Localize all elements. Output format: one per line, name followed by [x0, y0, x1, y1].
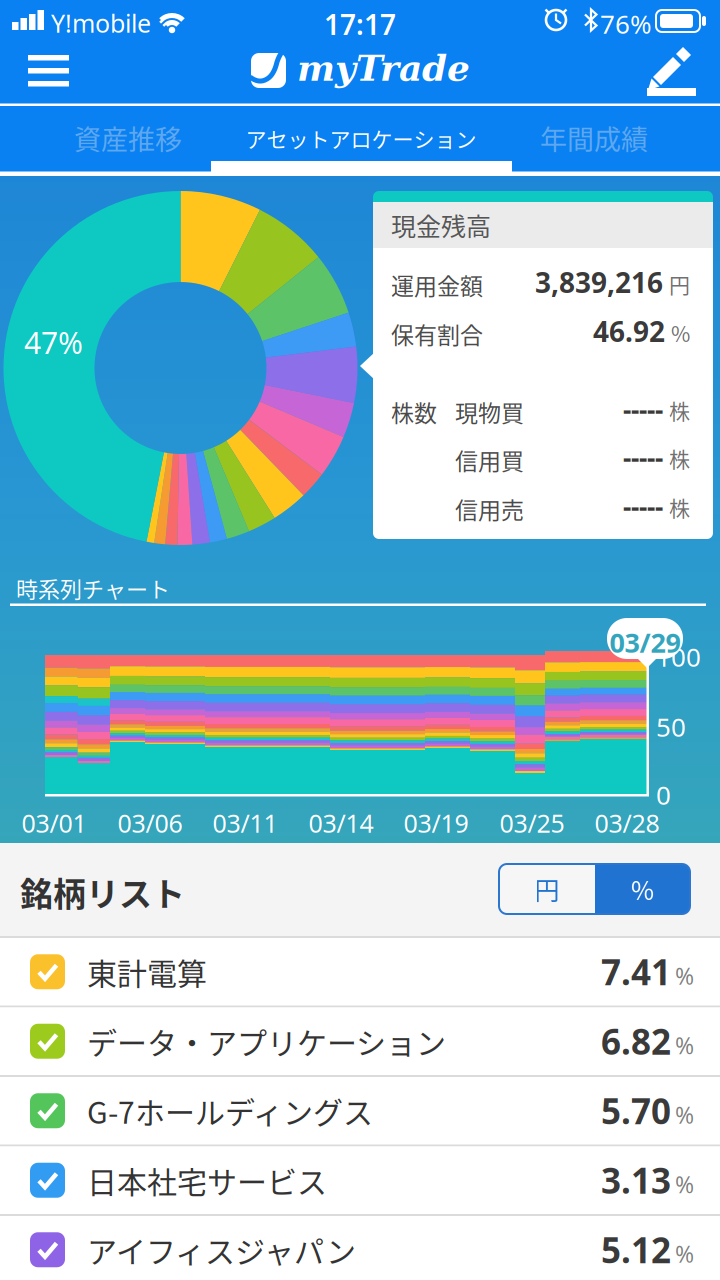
staticText: アイフィスジャパン: [87, 1228, 356, 1271]
staticText: %: [675, 1238, 694, 1270]
staticText: 03/06: [117, 806, 182, 840]
staticText: 信用売: [455, 492, 524, 525]
button[interactable]: Menu: [0, 0, 70, 60]
staticText: 76%: [600, 6, 652, 41]
staticText: 5.12: [601, 1226, 671, 1274]
staticText: 3.13: [601, 1156, 671, 1204]
button[interactable]: Edit: [0, 0, 60, 62]
staticText: 時系列チャート: [16, 572, 170, 604]
button[interactable]: %: [595, 864, 690, 914]
staticText: 株: [669, 395, 690, 425]
staticText: 0: [656, 777, 671, 812]
staticText: 現物買: [455, 395, 524, 428]
button[interactable]: アセットアロケーション: [211, 112, 511, 164]
staticText: 7.41: [601, 948, 671, 996]
staticText: -----: [623, 440, 663, 475]
button[interactable]: G-7ホールディングス: [0, 1077, 720, 1144]
staticText: データ・アプリケーション: [87, 1019, 446, 1063]
staticText: 03/01: [21, 806, 86, 840]
staticText: 信用買: [455, 443, 524, 476]
staticText: myTrade: [297, 47, 470, 89]
staticText: 03/19: [403, 806, 468, 840]
staticText: -----: [623, 392, 663, 427]
staticText: %: [631, 871, 654, 907]
staticText: 47%: [24, 322, 83, 363]
staticText: %: [675, 1169, 694, 1200]
staticText: 5.70: [601, 1087, 671, 1135]
staticText: 円: [534, 871, 559, 907]
staticText: 03/29: [609, 624, 680, 661]
staticText: 03/28: [594, 806, 659, 840]
staticText: 03/11: [212, 806, 277, 840]
staticText: 株: [669, 443, 690, 473]
button[interactable]: 円: [499, 864, 595, 914]
staticText: 株: [669, 492, 690, 522]
button[interactable]: 資産推移: [28, 112, 228, 164]
button[interactable]: アイフィスジャパン: [0, 1216, 720, 1280]
staticText: 資産推移: [74, 118, 182, 158]
staticText: 年間成績: [540, 118, 648, 158]
staticText: アセットアロケーション: [245, 123, 476, 153]
staticText: 03/25: [499, 806, 564, 840]
staticText: 6.82: [601, 1017, 671, 1065]
staticText: 保有割合: [391, 317, 483, 350]
staticText: 50: [656, 709, 686, 744]
staticText: 17:17: [324, 5, 396, 43]
staticText: 東計電算: [87, 950, 207, 993]
staticText: 円: [669, 269, 690, 299]
button[interactable]: 年間成績: [494, 112, 694, 164]
staticText: G-7ホールディングス: [87, 1089, 373, 1132]
staticText: 03/14: [308, 806, 373, 840]
staticText: %: [675, 1099, 694, 1131]
staticText: %: [675, 960, 694, 992]
staticText: 46.92: [593, 312, 665, 350]
staticText: Y!mobile: [51, 6, 151, 40]
staticText: 日本社宅サービス: [87, 1158, 327, 1202]
staticText: 株数: [391, 395, 437, 428]
staticText: -----: [623, 489, 663, 524]
staticText: 現金残高: [391, 207, 491, 243]
staticText: 100: [656, 639, 701, 674]
button[interactable]: 日本社宅サービス: [0, 1146, 720, 1214]
staticText: %: [671, 318, 690, 348]
button[interactable]: データ・アプリケーション: [0, 1007, 720, 1075]
staticText: 銘柄リスト: [20, 868, 185, 916]
staticText: 運用金額: [391, 268, 483, 301]
staticText: 3,839,216: [535, 263, 663, 301]
staticText: %: [675, 1030, 694, 1061]
button[interactable]: 東計電算: [0, 938, 720, 1005]
